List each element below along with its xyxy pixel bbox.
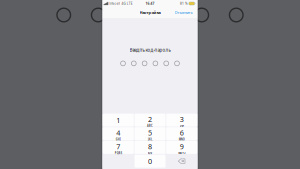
staticText: 16:47 xyxy=(145,1,154,6)
staticText: Введіть код-пароль xyxy=(129,47,170,53)
staticText: Настройка xyxy=(139,10,160,15)
staticText: 81 % xyxy=(180,1,188,6)
staticText: Отменить xyxy=(174,10,192,15)
staticText: 4G xyxy=(121,1,125,6)
staticText: 0 xyxy=(148,156,152,166)
button[interactable]: Delete xyxy=(166,155,197,168)
staticText: TUV xyxy=(147,151,152,155)
button[interactable]: 6 xyxy=(166,127,197,140)
staticText: WXYZ xyxy=(178,151,185,155)
button[interactable]: 0 xyxy=(134,155,165,168)
staticText: lifecell xyxy=(109,1,120,6)
button[interactable]: 7 xyxy=(103,141,134,154)
staticText: ABC xyxy=(147,124,153,127)
button[interactable]: Отменить xyxy=(173,8,193,17)
staticText: 6 xyxy=(180,128,184,138)
button[interactable]: 1 xyxy=(103,113,134,126)
staticText: PQRS xyxy=(115,151,122,155)
staticText: MNO xyxy=(179,138,185,141)
staticText: 1 xyxy=(116,115,120,125)
staticText: 7 xyxy=(116,142,120,151)
button[interactable]: 8 xyxy=(134,141,165,154)
staticText: 4 xyxy=(116,128,120,138)
staticText: 2 xyxy=(148,114,152,124)
staticText: 5 xyxy=(148,128,152,138)
staticText: 9 xyxy=(180,142,184,151)
button[interactable]: 4 xyxy=(103,127,134,140)
staticText: GHI xyxy=(116,138,121,141)
staticText: 3 xyxy=(180,114,184,124)
button[interactable]: 2 xyxy=(134,113,165,126)
button[interactable]: 9 xyxy=(166,141,197,154)
staticText: DEF xyxy=(180,124,184,127)
button[interactable]: 3 xyxy=(166,113,197,126)
staticText: JKL xyxy=(148,138,152,141)
button[interactable]: 5 xyxy=(134,127,165,140)
staticText: LTE xyxy=(127,1,133,6)
staticText: 8 xyxy=(148,142,152,151)
